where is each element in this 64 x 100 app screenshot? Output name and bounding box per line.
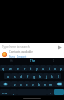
button[interactable]: Shift: [0, 81, 11, 87]
staticText: c: [26, 82, 28, 87]
staticText: o: [54, 66, 57, 71]
button[interactable]: e: [14, 65, 21, 71]
button[interactable]: f: [25, 73, 31, 79]
button[interactable]: ,: [10, 89, 17, 95]
button[interactable]: r: [21, 65, 28, 71]
button[interactable]: m: [48, 81, 54, 87]
staticText: i: [49, 66, 50, 71]
staticText: I: [53, 59, 55, 63]
staticText: ?123: [2, 91, 8, 94]
staticText: j: [46, 74, 47, 79]
staticText: h: [39, 74, 42, 79]
button[interactable]: a: [4, 73, 11, 79]
button[interactable]: Enter: [54, 89, 64, 95]
staticText: Contacts available: [9, 50, 33, 54]
button[interactable]: w: [7, 65, 14, 71]
staticText: t: [30, 66, 32, 71]
staticText: Hi: [10, 59, 13, 63]
button[interactable]: Backspace: [54, 81, 64, 87]
staticText: g: [33, 74, 36, 79]
staticText: y: [36, 66, 38, 71]
staticText: l: [58, 74, 59, 79]
button[interactable]: u: [40, 65, 46, 71]
button[interactable]: .: [47, 89, 54, 95]
staticText: m: [49, 82, 53, 87]
button[interactable]: k: [49, 73, 55, 79]
button[interactable]: v: [30, 81, 36, 87]
staticText: p: [60, 66, 63, 71]
staticText: k: [51, 74, 53, 79]
staticText: a: [7, 74, 9, 79]
button[interactable]: i: [46, 65, 52, 71]
staticText: f: [27, 74, 29, 79]
button[interactable]: d: [18, 73, 25, 79]
staticText: u: [42, 66, 45, 71]
button[interactable]: z: [11, 81, 18, 87]
button[interactable]: g: [31, 73, 37, 79]
button[interactable]: o: [52, 65, 58, 71]
staticText: ,: [13, 90, 14, 95]
staticText: .: [50, 90, 51, 95]
button[interactable]: b: [36, 81, 42, 87]
button[interactable]: x: [18, 81, 24, 87]
button[interactable]: Play: [57, 45, 62, 50]
staticText: d: [20, 74, 23, 79]
button[interactable]: h: [37, 73, 43, 79]
staticText: v: [32, 82, 34, 87]
button[interactable]: c: [24, 81, 30, 87]
staticText: The: [30, 59, 36, 63]
staticText: e: [17, 66, 19, 71]
staticText: b: [38, 82, 41, 87]
staticText: x: [20, 82, 22, 87]
button[interactable]: j: [43, 73, 49, 79]
staticText: r: [24, 66, 26, 71]
staticText: s: [14, 74, 16, 79]
staticText: z: [14, 82, 16, 87]
staticText: q: [2, 66, 5, 71]
button[interactable]: t: [28, 65, 34, 71]
button[interactable]: n: [42, 81, 48, 87]
button[interactable]: l: [55, 73, 61, 79]
button[interactable]: q: [0, 65, 7, 71]
button[interactable]: s: [11, 73, 18, 79]
button[interactable]: Type here to search: [0, 43, 64, 58]
staticText: Type here to search: [2, 45, 30, 49]
button[interactable]: p: [58, 65, 64, 71]
staticText: w: [9, 66, 12, 71]
staticText: n: [44, 82, 47, 87]
staticText: Sync Import: [9, 55, 27, 58]
button[interactable]: ?123: [0, 89, 10, 95]
button[interactable]: y: [34, 65, 40, 71]
